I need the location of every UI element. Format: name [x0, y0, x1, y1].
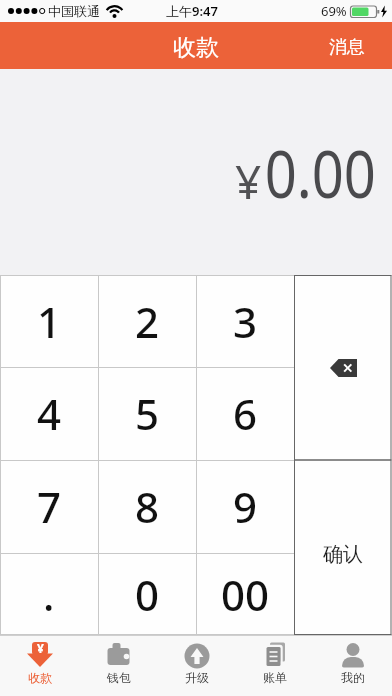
- staticText: 中国联通: [48, 3, 100, 19]
- staticText: 我的: [341, 670, 365, 685]
- button[interactable]: 我的: [314, 636, 392, 696]
- staticText: 7: [37, 478, 62, 535]
- staticText: ¥: [235, 150, 262, 213]
- staticText: 0: [135, 566, 160, 623]
- button[interactable]: 消息: [329, 36, 365, 59]
- staticText: 8: [135, 478, 160, 535]
- button[interactable]: 1: [0, 275, 98, 367]
- button[interactable]: 钱包: [79, 636, 158, 696]
- staticText: 钱包: [107, 670, 131, 685]
- staticText: 升级: [185, 670, 209, 685]
- staticText: .: [43, 566, 55, 623]
- staticText: 9: [233, 478, 258, 535]
- button[interactable]: 7: [0, 460, 98, 553]
- button[interactable]: 0: [98, 553, 196, 635]
- button[interactable]: .: [0, 553, 98, 635]
- button[interactable]: 4: [0, 367, 98, 460]
- staticText: 4: [37, 385, 62, 442]
- staticText: ¥: [37, 640, 44, 656]
- staticText: 00: [221, 566, 270, 623]
- staticText: 6: [233, 385, 258, 442]
- button[interactable]: 2: [98, 275, 196, 367]
- staticText: 上午9:47: [166, 2, 218, 20]
- button[interactable]: 6: [196, 367, 294, 460]
- staticText: 2: [135, 293, 160, 350]
- staticText: 确认: [323, 542, 363, 567]
- button[interactable]: ¥: [0, 636, 79, 696]
- button[interactable]: 5: [98, 367, 196, 460]
- button[interactable]: [294, 275, 392, 460]
- button[interactable]: 00: [196, 553, 294, 635]
- button[interactable]: 确认: [294, 460, 392, 635]
- button[interactable]: 升级: [158, 636, 236, 696]
- staticText: 收款: [28, 670, 52, 685]
- staticText: 1: [37, 293, 62, 350]
- button[interactable]: 账单: [236, 636, 314, 696]
- button[interactable]: 9: [196, 460, 294, 553]
- button[interactable]: 收款: [173, 33, 219, 62]
- staticText: 账单: [263, 670, 287, 685]
- staticText: 消息: [329, 36, 365, 59]
- staticText: 69%: [321, 2, 347, 20]
- staticText: 0.00: [265, 127, 376, 217]
- button[interactable]: 3: [196, 275, 294, 367]
- button[interactable]: 8: [98, 460, 196, 553]
- staticText: 3: [233, 293, 258, 350]
- staticText: 5: [135, 385, 160, 442]
